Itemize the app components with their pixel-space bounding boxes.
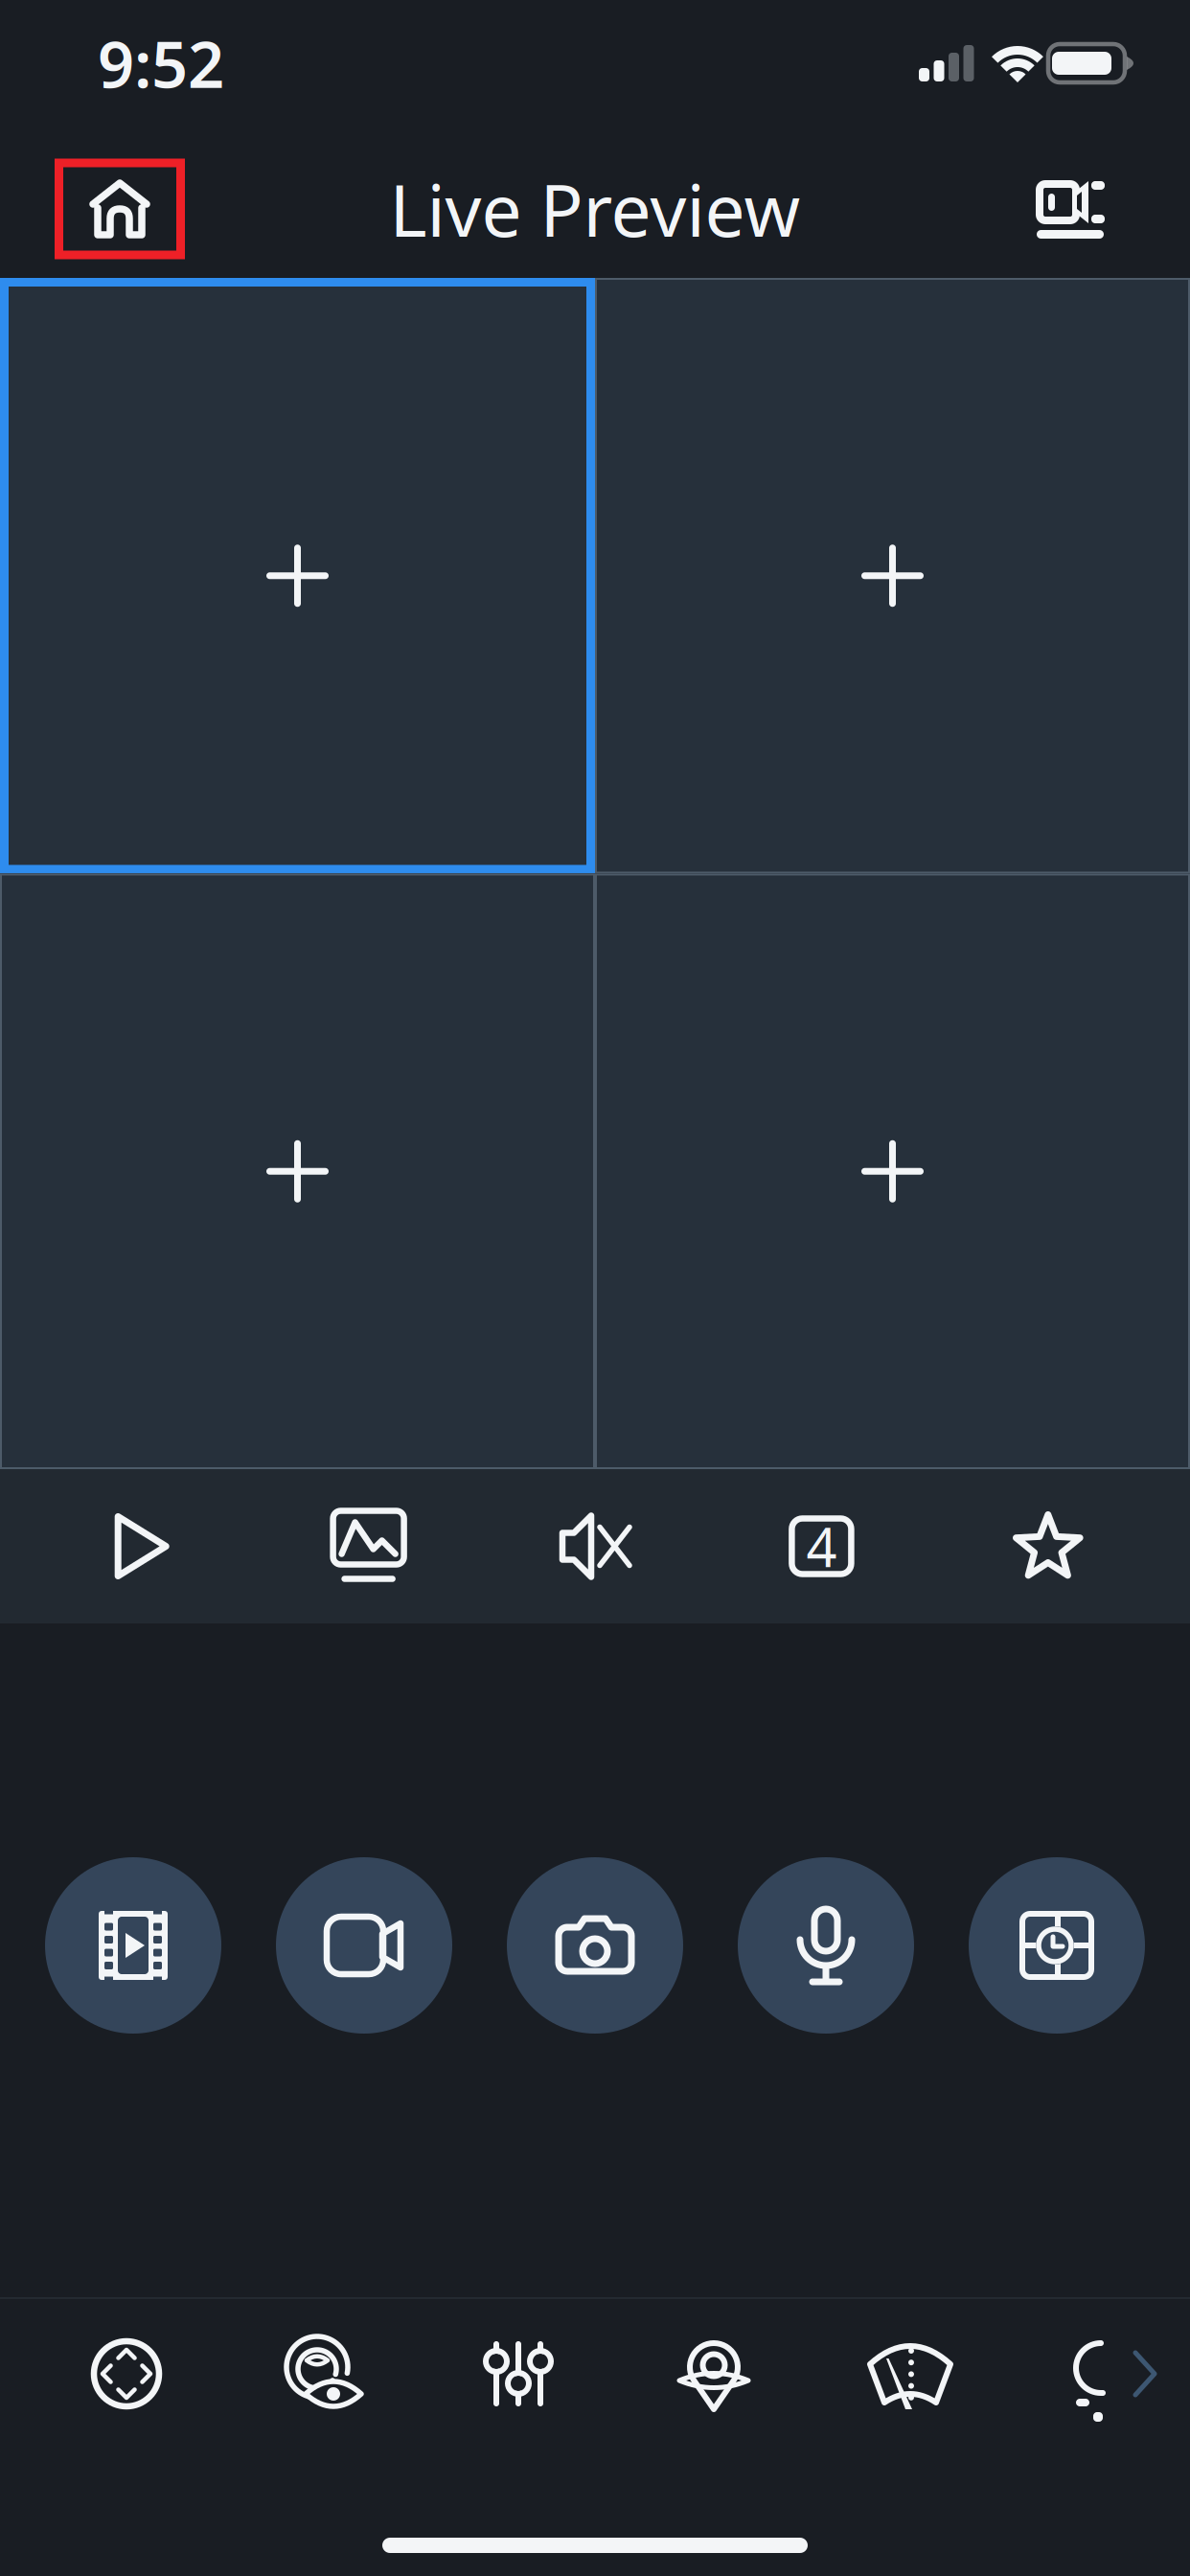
button[interactable]: Position [647, 2316, 781, 2431]
button[interactable]: Home [55, 159, 185, 259]
staticText: 4 [806, 1511, 837, 1582]
button[interactable]: Camera list [1020, 162, 1120, 258]
button[interactable]: Preset [255, 2316, 389, 2431]
button[interactable]: Snapshot [507, 1857, 683, 2034]
button[interactable]: Stream quality [255, 1469, 482, 1623]
button[interactable]: Add camera [595, 874, 1190, 1469]
button[interactable]: Add camera [0, 874, 595, 1469]
staticText: 9:52 [98, 21, 224, 106]
button[interactable]: PTZ control [59, 2316, 194, 2431]
button[interactable]: Add camera [595, 278, 1190, 874]
button[interactable]: More [1117, 2316, 1175, 2431]
button[interactable]: Mute [482, 1469, 708, 1623]
button[interactable]: More tools [1054, 2316, 1131, 2431]
staticText: Live Preview [389, 161, 801, 256]
button[interactable]: Add camera [0, 278, 595, 874]
button[interactable]: Play [29, 1469, 255, 1623]
button[interactable]: Two-way talk [738, 1857, 914, 2034]
button[interactable]: Recordings [45, 1857, 221, 2034]
button[interactable]: Record video [276, 1857, 452, 2034]
button[interactable]: Wiper [843, 2316, 977, 2431]
button[interactable]: Split layout [708, 1469, 935, 1623]
button[interactable]: Playback [969, 1857, 1145, 2034]
button[interactable]: Image settings [451, 2316, 585, 2431]
button[interactable]: Favorites [935, 1469, 1161, 1623]
